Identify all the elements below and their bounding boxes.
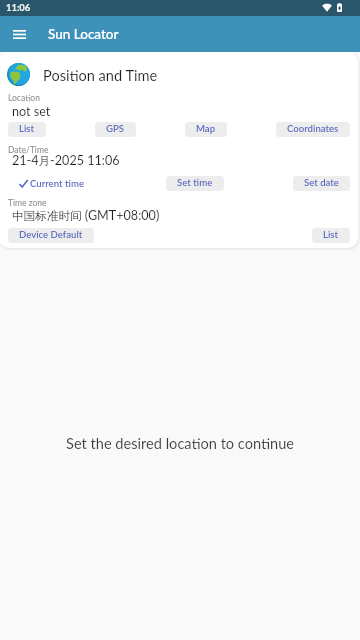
button[interactable]: Open navigation drawer xyxy=(6,21,32,47)
button[interactable]: Set time xyxy=(166,176,224,191)
staticText: List xyxy=(323,229,339,241)
button[interactable]: List xyxy=(312,228,350,243)
button[interactable]: Current time xyxy=(8,176,96,191)
staticText: 21-4月-2025 11:06 xyxy=(12,153,120,169)
button[interactable]: Device Default xyxy=(8,228,94,243)
staticText: Set date xyxy=(304,177,339,189)
staticText: Sun Locator xyxy=(48,26,119,42)
staticText: Current time xyxy=(30,178,85,190)
button[interactable]: Set date xyxy=(293,176,350,191)
button[interactable]: Map xyxy=(185,122,227,137)
staticText: Device Default xyxy=(19,229,83,241)
staticText: GPS xyxy=(106,123,125,135)
button[interactable]: GPS xyxy=(95,122,136,137)
staticText: Location xyxy=(8,93,40,103)
staticText: Coordinates xyxy=(287,123,339,135)
button[interactable]: List xyxy=(8,122,46,137)
staticText: Position and Time xyxy=(43,67,158,85)
staticText: Set the desired location to continue xyxy=(66,435,294,453)
staticText: Time zone xyxy=(8,198,47,208)
staticText: Map xyxy=(196,123,216,135)
button[interactable]: Coordinates xyxy=(276,122,350,137)
staticText: Date/Time xyxy=(8,145,49,155)
staticText: not set xyxy=(12,104,51,119)
staticText: 中国标准时间 (GMT+08:00) xyxy=(12,208,160,224)
staticText: Set time xyxy=(177,177,213,189)
staticText: 11:06 xyxy=(6,2,31,13)
staticText: List xyxy=(19,123,35,135)
